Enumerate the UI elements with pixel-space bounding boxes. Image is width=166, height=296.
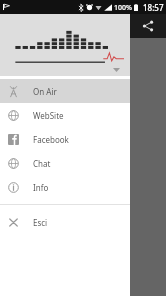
staticText: Facebook bbox=[33, 134, 69, 145]
staticText: 18:57 bbox=[143, 2, 164, 13]
staticText: Chat bbox=[33, 158, 51, 169]
staticText: WebSite bbox=[33, 110, 64, 121]
staticText: On Air bbox=[33, 86, 57, 97]
button[interactable]: Chat bbox=[0, 151, 130, 175]
button[interactable]: Esci bbox=[0, 210, 130, 234]
button[interactable] bbox=[0, 14, 130, 76]
button[interactable]: Share bbox=[130, 14, 166, 38]
button[interactable]: Facebook bbox=[0, 127, 130, 151]
staticText: Esci bbox=[33, 217, 48, 228]
button[interactable]: WebSite bbox=[0, 103, 130, 127]
button[interactable]: Info bbox=[0, 175, 130, 199]
button[interactable]: On Air bbox=[0, 79, 130, 103]
staticText: Info bbox=[33, 182, 49, 193]
staticText: 100% bbox=[114, 3, 132, 13]
